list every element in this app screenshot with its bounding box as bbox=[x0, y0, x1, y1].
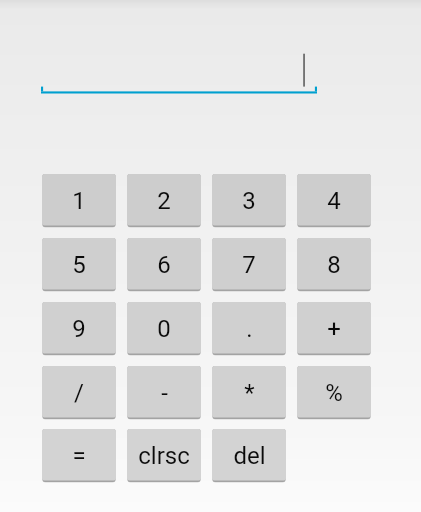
staticText: 9 bbox=[72, 315, 86, 343]
staticText: + bbox=[327, 315, 341, 343]
staticText: 5 bbox=[72, 251, 86, 279]
button[interactable]: + bbox=[297, 302, 371, 357]
button[interactable]: = bbox=[42, 429, 116, 484]
button[interactable]: 3 bbox=[212, 174, 286, 229]
staticText: . bbox=[246, 315, 253, 343]
button[interactable]: % bbox=[297, 366, 371, 421]
staticText: - bbox=[161, 379, 168, 407]
staticText: del bbox=[233, 442, 266, 470]
staticText: 1 bbox=[72, 187, 86, 215]
button[interactable]: / bbox=[42, 366, 116, 421]
staticText: 8 bbox=[327, 251, 341, 279]
button[interactable]: clrsc bbox=[127, 429, 201, 484]
button[interactable]: * bbox=[212, 366, 286, 421]
staticText: 4 bbox=[327, 187, 341, 215]
staticText: 7 bbox=[242, 251, 256, 279]
staticText: * bbox=[244, 379, 255, 407]
button[interactable]: 6 bbox=[127, 238, 201, 293]
staticText: 0 bbox=[157, 315, 171, 343]
staticText: / bbox=[74, 379, 84, 407]
button[interactable]: 9 bbox=[42, 302, 116, 357]
button[interactable]: 2 bbox=[127, 174, 201, 229]
button[interactable]: 4 bbox=[297, 174, 371, 229]
button[interactable]: 7 bbox=[212, 238, 286, 293]
button[interactable]: 0 bbox=[127, 302, 201, 357]
staticText: = bbox=[72, 442, 86, 470]
staticText: 2 bbox=[157, 187, 171, 215]
staticText: 3 bbox=[242, 187, 256, 215]
staticText: % bbox=[325, 379, 343, 407]
button[interactable]: del bbox=[212, 429, 286, 484]
button[interactable]: Expression input bbox=[41, 50, 317, 95]
button[interactable]: 1 bbox=[42, 174, 116, 229]
button[interactable]: 5 bbox=[42, 238, 116, 293]
button[interactable]: 8 bbox=[297, 238, 371, 293]
button[interactable]: - bbox=[127, 366, 201, 421]
staticText: clrsc bbox=[138, 442, 190, 470]
staticText: 6 bbox=[157, 251, 171, 279]
button[interactable]: . bbox=[212, 302, 286, 357]
